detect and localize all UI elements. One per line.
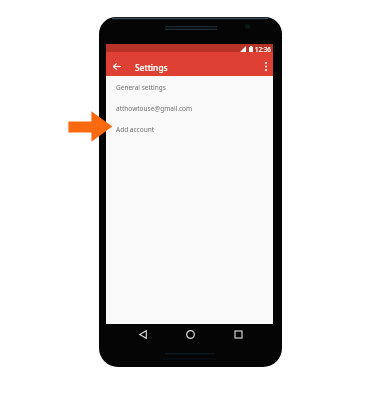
staticText: Add account [116, 125, 155, 134]
staticText: General settings [116, 83, 166, 92]
staticText: atthowtouse@gmail.com [116, 104, 193, 113]
button[interactable]: Add account [106, 119, 273, 140]
button[interactable]: Home [166, 326, 214, 343]
button[interactable]: Navigate up [106, 52, 128, 76]
button[interactable]: General settings [106, 77, 273, 98]
staticText: Settings [135, 62, 168, 73]
button[interactable]: Recent apps [214, 326, 262, 343]
staticText: 12:36 [255, 45, 271, 53]
button[interactable]: More options [256, 52, 273, 76]
button[interactable]: Back [119, 326, 166, 343]
button[interactable]: atthowtouse@gmail.com [106, 98, 273, 119]
